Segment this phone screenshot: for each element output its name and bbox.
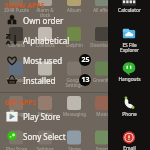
staticText: 25 [81, 55, 90, 65]
staticText: Smart Connect [93, 146, 111, 150]
staticText: Hangouts [118, 76, 141, 83]
button[interactable]: Most used [0, 50, 108, 70]
staticText: Greenify [93, 77, 111, 83]
staticText: SHOW APPS [5, 1, 45, 10]
staticText: Alarm & clock [36, 7, 54, 18]
staticText: ES File Explorer [120, 42, 139, 53]
staticText: Calculator [118, 7, 141, 14]
button[interactable]: Play Store [0, 106, 108, 126]
staticText: Music [96, 111, 109, 117]
button[interactable]: Own order [0, 10, 108, 30]
staticText: Sony Select [23, 131, 66, 142]
staticText: Album [67, 7, 81, 13]
button[interactable]: Sony Select [0, 126, 108, 146]
staticText: Downloads [90, 42, 114, 48]
staticText: Facebook [6, 77, 27, 83]
staticText: Settings [36, 146, 54, 150]
staticText: 13 [81, 75, 90, 85]
staticText: Contacts [36, 42, 55, 48]
button[interactable]: Email [108, 123, 150, 150]
staticText: Installed [23, 75, 56, 86]
staticText: Alphabetical [23, 35, 70, 46]
staticText: Dolphin [66, 42, 83, 48]
staticText: Skype [68, 146, 81, 150]
staticText: All effect [93, 7, 112, 13]
staticText: Most used [23, 55, 63, 66]
button[interactable]: Alphabetical [0, 30, 108, 50]
button[interactable]: Installed [0, 70, 108, 90]
staticText: Play Store [23, 111, 61, 122]
staticText: Own order [23, 15, 64, 26]
staticText: Email [123, 145, 136, 150]
staticText: Messaging [63, 111, 86, 117]
staticText: Lifelog [9, 111, 24, 117]
button[interactable]: Phone [108, 88, 150, 119]
staticText: Play Store [6, 146, 27, 150]
staticText: Gmail [39, 77, 52, 83]
button[interactable]: Hangouts [108, 54, 150, 85]
staticText: Camera [8, 42, 25, 48]
button[interactable]: Calculator [108, 0, 150, 15]
staticText: Google Settings [65, 77, 83, 88]
staticText: GET APPS [5, 98, 37, 106]
staticText: Movies [38, 111, 53, 117]
button[interactable]: ES File Explorer [108, 19, 150, 50]
staticText: 2048 Puzzle [4, 7, 29, 13]
staticText: Phone [122, 111, 137, 118]
